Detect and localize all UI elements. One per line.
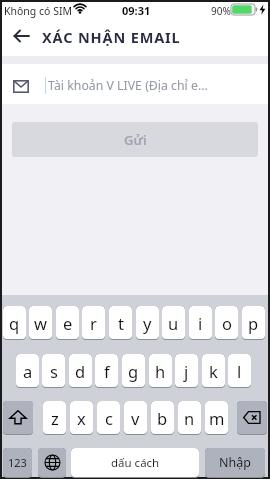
button[interactable]: o — [215, 306, 238, 340]
button[interactable]: t — [109, 306, 132, 340]
staticText: a — [23, 360, 33, 382]
button[interactable]: k — [202, 354, 225, 388]
button[interactable]: c — [97, 401, 120, 435]
staticText: g — [128, 360, 139, 382]
button[interactable]: l — [228, 354, 251, 388]
staticText: u — [168, 312, 179, 334]
button[interactable]: Nhập — [205, 448, 265, 478]
staticText: z — [51, 407, 59, 429]
staticText: h — [155, 360, 166, 382]
button[interactable]: g — [122, 354, 145, 388]
button[interactable]: x — [70, 401, 93, 435]
staticText: j — [184, 360, 189, 382]
staticText: 09:31 — [122, 3, 151, 18]
staticText: r — [90, 312, 97, 334]
button[interactable]: a — [16, 354, 39, 388]
staticText: 90% — [211, 4, 231, 18]
staticText: i — [198, 312, 203, 334]
button[interactable]: r — [82, 306, 105, 340]
button[interactable]: 123 — [3, 448, 32, 478]
staticText: n — [184, 407, 195, 429]
staticText: y — [143, 312, 152, 334]
button[interactable]: f — [95, 354, 118, 388]
button[interactable]: j — [175, 354, 198, 388]
button[interactable]: n — [178, 401, 201, 435]
staticText: v — [131, 407, 140, 429]
staticText: Gửi — [124, 131, 147, 149]
button[interactable] — [6, 20, 38, 52]
staticText: q — [9, 312, 20, 334]
button[interactable]: v — [124, 401, 147, 435]
staticText: e — [63, 312, 73, 334]
button[interactable]: m — [205, 401, 228, 435]
button[interactable]: Tài khoản V LIVE (Địa chỉ e... — [2, 64, 268, 105]
button[interactable]: z — [43, 401, 66, 435]
button[interactable]: dấu cách — [71, 448, 199, 478]
staticText: o — [222, 312, 232, 334]
button[interactable]: q — [3, 306, 26, 340]
staticText: t — [118, 312, 124, 334]
button[interactable] — [237, 401, 267, 435]
button[interactable]: y — [136, 306, 159, 340]
button[interactable]: s — [42, 354, 65, 388]
staticText: l — [237, 360, 242, 382]
staticText: 123 — [8, 455, 27, 470]
staticText: b — [157, 407, 168, 429]
staticText: m — [209, 407, 225, 429]
staticText: XÁC NHẬN EMAIL — [42, 27, 181, 47]
button[interactable]: e — [56, 306, 79, 340]
button[interactable]: b — [151, 401, 174, 435]
button[interactable]: w — [29, 306, 52, 340]
staticText: dấu cách — [111, 455, 160, 471]
staticText: Không có SIM — [4, 4, 72, 18]
staticText: s — [50, 360, 58, 382]
staticText: c — [105, 407, 113, 429]
staticText: w — [34, 312, 47, 334]
button[interactable] — [38, 448, 66, 478]
button[interactable]: p — [242, 306, 265, 340]
button[interactable]: i — [189, 306, 212, 340]
staticText: d — [75, 360, 86, 382]
button[interactable]: Gửi — [12, 122, 258, 157]
staticText: k — [209, 360, 218, 382]
staticText: p — [248, 312, 259, 334]
button[interactable]: u — [162, 306, 185, 340]
button[interactable]: d — [69, 354, 92, 388]
staticText: Tài khoản V LIVE (Địa chỉ e... — [48, 77, 208, 94]
staticText: Nhập — [219, 454, 251, 471]
button[interactable] — [3, 401, 33, 435]
staticText: f — [104, 360, 110, 382]
staticText: x — [77, 407, 86, 429]
button[interactable]: h — [149, 354, 172, 388]
